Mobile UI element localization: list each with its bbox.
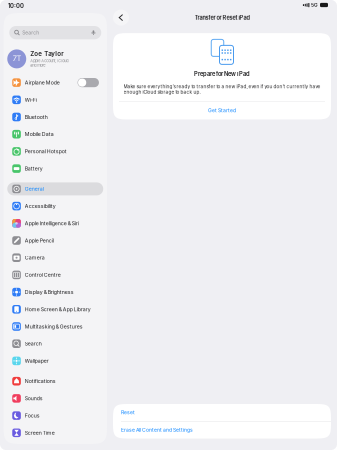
staticText: Mobile Data	[25, 131, 54, 137]
staticText: Personal Hotspot	[25, 148, 67, 155]
button[interactable]: Focus	[7, 407, 103, 424]
button[interactable]: Search	[9, 26, 101, 39]
staticText: Multitasking & Gestures	[25, 323, 83, 330]
button[interactable]: Camera	[7, 249, 103, 266]
button[interactable]: Search	[7, 335, 103, 352]
button[interactable]: Apple Pencil	[7, 232, 103, 249]
staticText: Prepare for New iPad	[194, 70, 250, 77]
button[interactable]: Screen Time	[7, 424, 103, 441]
staticText: Notifications	[25, 378, 56, 384]
staticText: Focus	[25, 412, 40, 419]
button[interactable]: Home Screen & App Library	[7, 301, 103, 318]
button[interactable]: Get Started	[113, 101, 331, 119]
staticText: General	[25, 186, 44, 192]
staticText: Battery	[25, 165, 43, 172]
button[interactable]: Control Centre	[7, 266, 103, 283]
staticText: 10:00	[8, 2, 24, 9]
button[interactable]: General	[7, 180, 103, 197]
button[interactable]: Wi-Fi	[7, 91, 103, 108]
button[interactable]: Apple Intelligence & Siri	[7, 215, 103, 232]
staticText: Search	[22, 30, 39, 36]
staticText: Apple Pencil	[25, 237, 54, 244]
button[interactable]: Airplane Mode	[7, 74, 103, 91]
button[interactable]: Erase All Content and Settings	[113, 421, 331, 438]
button[interactable]: Back	[113, 10, 129, 26]
button[interactable]: Multitasking & Gestures	[7, 318, 103, 335]
button[interactable]: Personal Hotspot	[7, 143, 103, 160]
staticText: Wallpaper	[25, 358, 49, 364]
staticText: Reset	[121, 409, 135, 415]
button[interactable]: Accessibility	[7, 197, 103, 215]
button[interactable]: Notifications	[7, 373, 103, 390]
staticText: Bluetooth	[25, 114, 48, 120]
button[interactable]: Battery	[7, 160, 103, 177]
staticText: Make sure everything's ready to transfer…	[123, 84, 320, 95]
staticText: Get Started	[208, 107, 236, 113]
staticText: Wi-Fi	[25, 97, 37, 103]
staticText: Home Screen & App Library	[25, 306, 91, 312]
staticText: Screen Time	[25, 430, 55, 436]
staticText: Search	[25, 341, 42, 347]
staticText: Sounds	[25, 395, 43, 402]
button[interactable]: ZT	[7, 44, 103, 74]
button[interactable]: Display & Brightness	[7, 283, 103, 301]
staticText: Display & Brightness	[25, 289, 74, 295]
staticText: Transfer or Reset iPad	[194, 14, 249, 21]
staticText: Accessibility	[25, 203, 56, 209]
staticText: Zoe Taylor	[30, 50, 63, 57]
button[interactable]: Wallpaper	[7, 352, 103, 369]
staticText: Camera	[25, 255, 45, 261]
staticText: Apple Account, iCloud	[30, 58, 68, 63]
staticText: Airplane Mode	[25, 79, 60, 86]
staticText: and more	[30, 63, 45, 68]
button[interactable]: Mobile Data	[7, 126, 103, 143]
staticText: Control Centre	[25, 272, 61, 278]
staticText: 5G	[311, 2, 318, 8]
staticText: Apple Intelligence & Siri	[25, 220, 79, 226]
staticText: ZT	[13, 55, 21, 63]
button[interactable]: Bluetooth	[7, 108, 103, 126]
button[interactable]: Reset	[113, 404, 331, 421]
button[interactable]: Sounds	[7, 390, 103, 407]
staticText: Erase All Content and Settings	[121, 427, 193, 433]
